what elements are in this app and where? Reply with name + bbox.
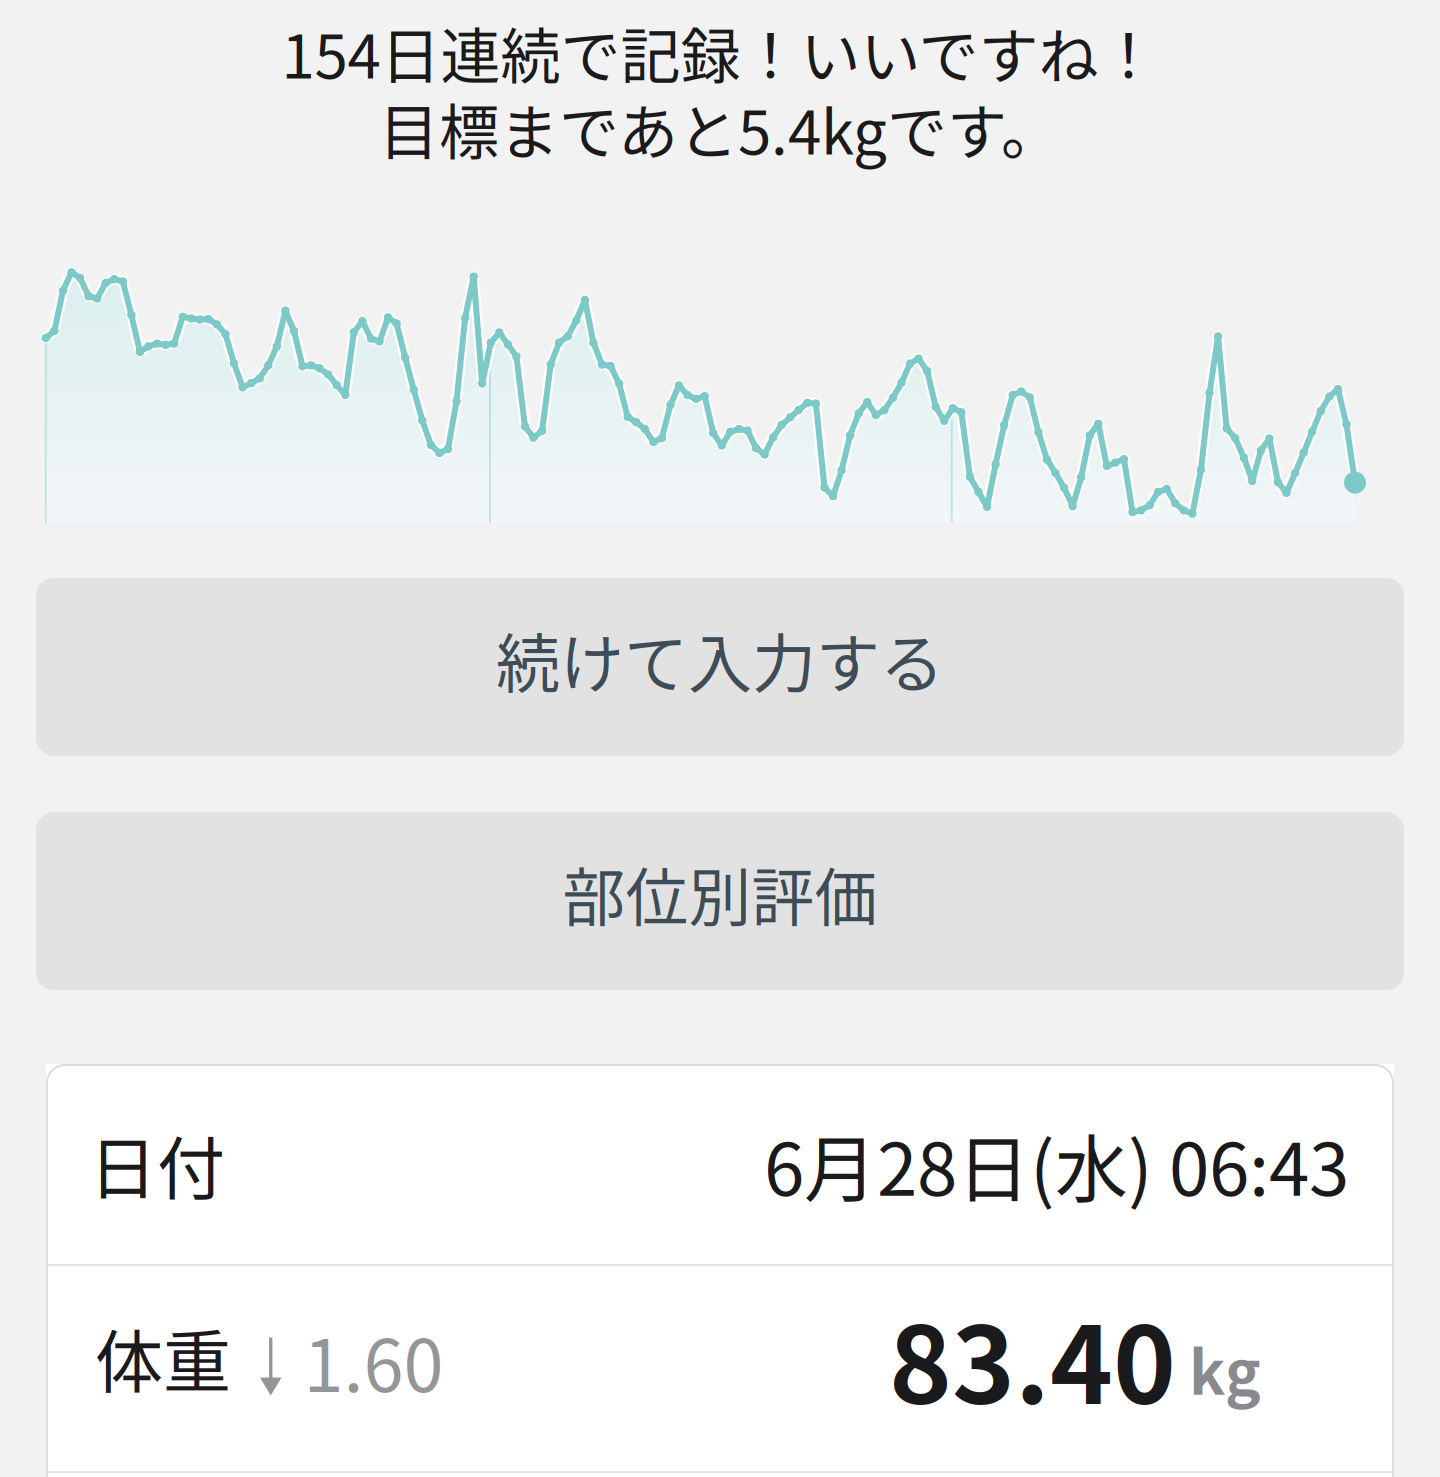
- staticText: 6月28日(水) 06:43: [764, 1111, 1349, 1217]
- staticText: 日付: [89, 1115, 225, 1213]
- button[interactable]: 部位別評価: [36, 812, 1404, 990]
- staticText: 154日連続で記録！いいですね！: [281, 9, 1158, 96]
- button[interactable]: 日付: [46, 1064, 1394, 1264]
- staticText: 部位別評価: [562, 848, 877, 938]
- staticText: kg: [1189, 1325, 1261, 1412]
- button[interactable]: 体重: [46, 1255, 1394, 1460]
- staticText: 続けて入力する: [496, 613, 944, 705]
- staticText: 1.60: [303, 1308, 443, 1413]
- staticText: 目標まであと5.4kgです。: [379, 85, 1061, 172]
- staticText: 83.40: [889, 1280, 1176, 1435]
- staticText: 体重: [95, 1308, 231, 1407]
- button[interactable]: 続けて入力する: [36, 578, 1404, 756]
